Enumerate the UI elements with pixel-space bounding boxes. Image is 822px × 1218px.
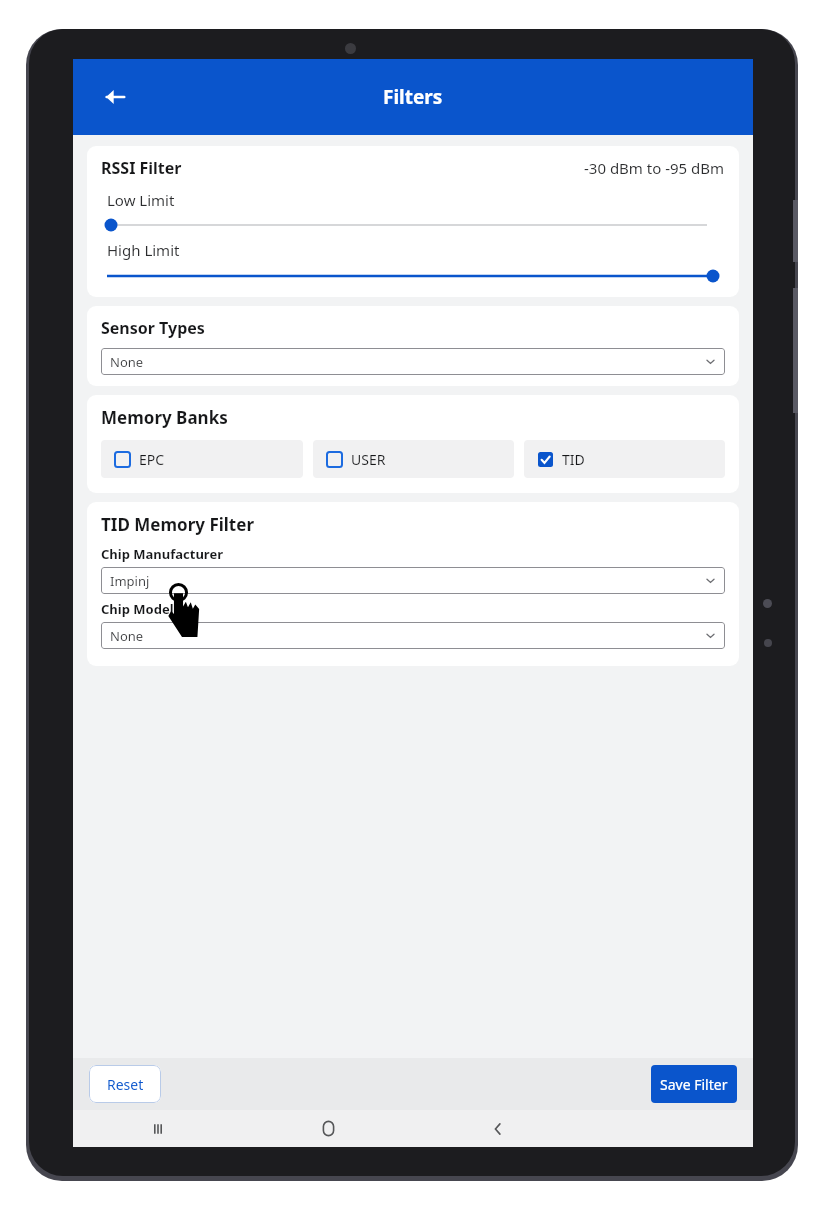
staticText: Save Filter xyxy=(660,1075,728,1094)
button[interactable]: Home xyxy=(243,1110,413,1147)
staticText: Chip Model xyxy=(101,600,174,618)
staticText: Reset xyxy=(107,1075,144,1094)
staticText: None xyxy=(110,627,144,645)
button[interactable]: USER xyxy=(313,440,514,478)
button[interactable]: Impinj xyxy=(101,567,725,594)
staticText: EPC xyxy=(139,450,165,469)
staticText: -30 dBm to -95 dBm xyxy=(584,158,725,178)
button[interactable]: Back xyxy=(413,1110,583,1147)
staticText: None xyxy=(110,353,144,371)
button[interactable]: Save Filter xyxy=(651,1065,737,1103)
button[interactable] xyxy=(101,269,725,283)
staticText: Memory Banks xyxy=(101,406,228,429)
staticText: TID xyxy=(562,450,585,469)
staticText: Impinj xyxy=(110,572,150,590)
button[interactable]: None xyxy=(101,348,725,375)
staticText: RSSI Filter xyxy=(101,157,182,179)
staticText: Chip Manufacturer xyxy=(101,545,223,563)
button[interactable]: Reset xyxy=(89,1065,161,1103)
button[interactable]: EPC xyxy=(101,440,303,478)
button[interactable]: TID xyxy=(524,440,725,478)
staticText: High Limit xyxy=(107,240,180,260)
staticText: USER xyxy=(351,450,386,469)
button[interactable]: Back xyxy=(93,75,137,119)
staticText: TID Memory Filter xyxy=(101,513,254,536)
button[interactable] xyxy=(101,218,725,232)
button[interactable]: Recents xyxy=(73,1110,243,1147)
staticText: Filters xyxy=(383,84,443,110)
staticText: Low Limit xyxy=(107,190,175,210)
staticText: Sensor Types xyxy=(101,317,205,339)
button[interactable]: None xyxy=(101,622,725,649)
